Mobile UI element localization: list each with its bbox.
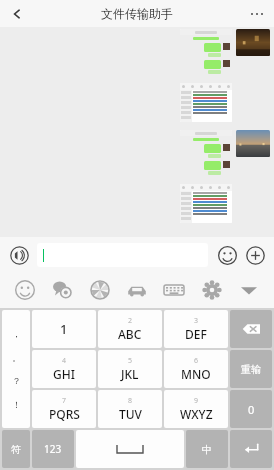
staticText: DEF [185, 326, 207, 342]
button[interactable]: Hide keyboard [233, 274, 265, 306]
button[interactable]: ， [2, 310, 30, 428]
staticText: 8 [128, 396, 133, 406]
button[interactable]: Car mode [121, 274, 153, 306]
button[interactable]: 符 [2, 430, 30, 468]
button[interactable]: More options [240, 0, 274, 27]
button[interactable]: 0 [230, 390, 272, 428]
staticText: 重输 [241, 363, 261, 376]
button[interactable]: Space [76, 430, 184, 468]
staticText: 123 [44, 442, 62, 456]
button[interactable]: Keyboard layout [158, 274, 190, 306]
staticText: 6 [194, 356, 199, 366]
button[interactable]: Photo [236, 130, 270, 157]
button[interactable]: Enter [230, 430, 272, 468]
staticText: ！ [12, 399, 21, 410]
staticText: 9 [194, 396, 199, 406]
staticText: 1 [60, 320, 68, 338]
staticText: 2 [128, 316, 133, 326]
staticText: MNO [181, 366, 211, 382]
staticText: ， [12, 328, 21, 339]
staticText: 中 [202, 443, 212, 456]
staticText: PQRS [49, 406, 80, 422]
button[interactable]: 3 [164, 310, 228, 348]
button[interactable]: 8 [98, 390, 162, 428]
button[interactable]: Phrases [47, 274, 79, 306]
staticText: GHI [53, 366, 75, 382]
button[interactable]: Camera [84, 274, 116, 306]
button[interactable]: 6 [164, 350, 228, 388]
staticText: 4 [62, 356, 67, 366]
button[interactable]: Backspace [230, 310, 272, 348]
button[interactable]: More [242, 242, 268, 268]
button[interactable]: 重输 [230, 350, 272, 388]
button[interactable]: Emoji keyboard [9, 274, 41, 306]
button[interactable]: Emoji [214, 242, 240, 268]
staticText: 0 [248, 402, 255, 417]
button[interactable] [37, 243, 208, 267]
staticText: ？ [12, 375, 21, 386]
button[interactable]: 中 [186, 430, 228, 468]
button[interactable]: Back [0, 0, 34, 27]
button[interactable]: 4 [32, 350, 96, 388]
staticText: ABC [118, 326, 142, 342]
button[interactable]: 5 [98, 350, 162, 388]
button[interactable]: Voice input [6, 242, 32, 268]
staticText: 3 [194, 316, 199, 326]
button[interactable]: 9 [164, 390, 228, 428]
button[interactable]: 7 [32, 390, 96, 428]
button[interactable]: 1 [32, 310, 96, 348]
button[interactable] [180, 29, 232, 122]
staticText: 。 [12, 352, 21, 363]
button[interactable]: Settings [196, 274, 228, 306]
staticText: 文件传输助手 [101, 6, 173, 21]
staticText: 7 [62, 396, 67, 406]
button[interactable]: Photo [236, 29, 270, 56]
staticText: TUV [119, 406, 142, 422]
button[interactable]: 2 [98, 310, 162, 348]
button[interactable] [180, 130, 232, 223]
staticText: JKL [121, 366, 139, 382]
staticText: WXYZ [180, 406, 213, 422]
staticText: 符 [11, 443, 21, 456]
button[interactable]: 123 [32, 430, 74, 468]
staticText: 5 [128, 356, 133, 366]
